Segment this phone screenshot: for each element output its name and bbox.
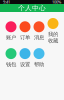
staticText: 个人中心 [18,4,46,12]
staticText: 账户 [6,34,16,41]
staticText: 设置 [20,61,30,68]
button[interactable]: 消息 [32,21,46,41]
staticText: 100% [52,0,61,5]
staticText: 9:41 [3,0,10,5]
button[interactable]: 钱包 [4,48,18,68]
staticText: 我的收藏 [48,31,58,44]
staticText: 钱包 [6,61,16,68]
button[interactable]: 账户 [4,21,18,41]
staticText: 帮助 [34,61,44,68]
button[interactable]: 设置 [18,48,32,68]
button[interactable]: 订单 [18,21,32,41]
staticText: 订单 [20,34,30,41]
button[interactable]: 帮助 [32,48,46,68]
button[interactable]: 我的收藏 [46,18,60,44]
staticText: 消息 [34,34,44,41]
